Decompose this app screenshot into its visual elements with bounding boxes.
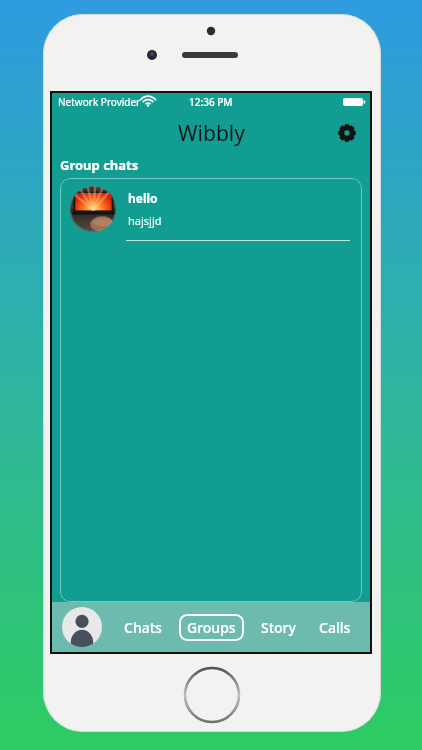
staticText: Network Provider	[58, 95, 141, 109]
staticText: 12:36 PM	[189, 95, 233, 109]
button[interactable]: Calls	[319, 618, 351, 637]
button[interactable]: Groups	[187, 618, 236, 637]
staticText: hajsjjd	[128, 213, 162, 228]
staticText: Group chats	[60, 156, 139, 174]
staticText: Wibbly	[178, 119, 245, 148]
staticText: hello	[128, 190, 158, 206]
staticText: Groups	[187, 618, 236, 637]
staticText: Calls	[319, 618, 351, 637]
button[interactable]: Profile	[62, 607, 102, 647]
staticText: Chats	[124, 618, 162, 637]
button[interactable]: Story	[261, 618, 296, 637]
button[interactable]: Chats	[124, 618, 162, 637]
button[interactable]: Settings	[332, 118, 362, 148]
button[interactable]: hello	[60, 178, 362, 240]
staticText: Story	[261, 618, 296, 637]
